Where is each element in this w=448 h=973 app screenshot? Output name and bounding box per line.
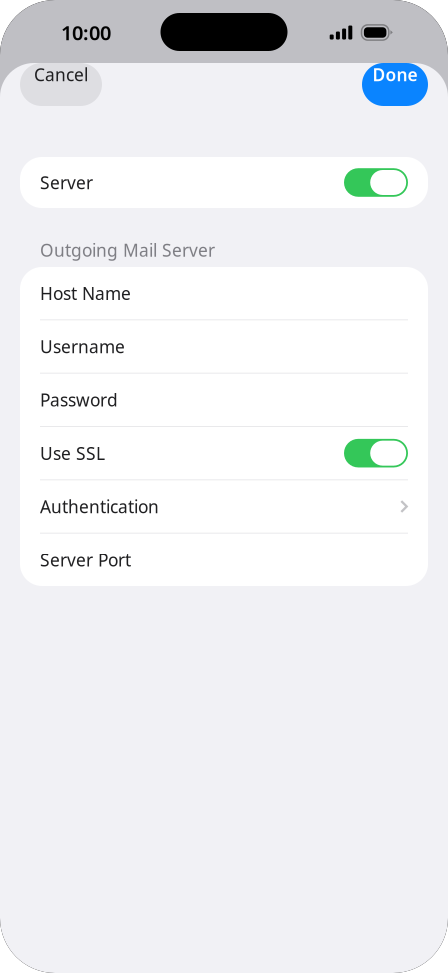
button[interactable]: Server Port [20, 534, 428, 586]
staticText: Cancel [34, 63, 88, 86]
staticText: Outgoing Mail Server [40, 238, 215, 261]
button[interactable]: Password [20, 374, 428, 426]
button[interactable]: Done [362, 63, 428, 106]
button[interactable]: Server [20, 157, 428, 208]
staticText: Server [40, 171, 93, 194]
staticText: Done [372, 63, 417, 86]
button[interactable]: Username [20, 320, 428, 373]
button[interactable]: Host Name [20, 267, 428, 319]
staticText: 10:00 [61, 19, 111, 46]
button[interactable]: Cancel [20, 63, 102, 106]
button[interactable]: Use SSL [20, 427, 428, 479]
staticText: Host Name [40, 282, 131, 305]
button[interactable]: Authentication [20, 480, 428, 533]
staticText: Username [40, 335, 125, 358]
staticText: Password [40, 388, 118, 411]
staticText: Use SSL [40, 442, 105, 465]
staticText: Authentication [40, 495, 159, 518]
staticText: Server Port [40, 548, 131, 571]
